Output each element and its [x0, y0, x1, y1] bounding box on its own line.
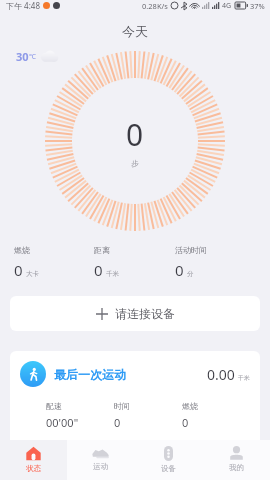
other: 运动 [92, 446, 109, 459]
staticText: 0 [14, 260, 23, 280]
staticText: 今天 [122, 23, 148, 39]
button[interactable]: 距离 [94, 243, 175, 282]
staticText: 燃烧 [14, 245, 30, 255]
staticText: 分 [187, 270, 194, 278]
staticText: 0 [94, 260, 103, 280]
staticText: 请连接设备 [115, 306, 175, 321]
staticText: 下午 4:48 [6, 0, 40, 11]
staticText: 我的 [229, 463, 244, 472]
button[interactable]: 运动 [67, 440, 134, 480]
other: 设备 [164, 446, 173, 461]
staticText: 步 [131, 159, 139, 168]
staticText: 00'00" [46, 415, 79, 430]
staticText: 0.28K/s [142, 1, 168, 11]
staticText: 30 [16, 49, 29, 64]
staticText: 大卡 [26, 270, 39, 278]
staticText: 状态 [26, 464, 41, 473]
staticText: 千米 [106, 270, 119, 278]
button[interactable]: 请连接设备 [10, 296, 260, 331]
staticText: 4G [222, 1, 232, 11]
other: 我的 [229, 446, 244, 460]
staticText: 0 [114, 415, 121, 430]
button[interactable]: 30 [14, 47, 61, 66]
staticText: 活动时间 [175, 245, 207, 255]
staticText: 运动 [93, 462, 108, 471]
staticText: 燃烧 [182, 401, 198, 411]
button[interactable]: 状态 [0, 440, 67, 480]
staticText: 配速 [46, 401, 62, 411]
button[interactable]: 设备 [134, 440, 202, 480]
staticText: 37% [250, 1, 265, 11]
staticText: 时间 [114, 401, 130, 411]
staticText: 0 [126, 114, 144, 155]
button[interactable]: 活动时间 [175, 243, 256, 282]
staticText: 0.00 [207, 365, 235, 384]
staticText: 距离 [94, 245, 110, 255]
staticText: 千米 [238, 374, 250, 382]
staticText: 最后一次运动 [54, 367, 126, 382]
button[interactable]: 最后一次运动 [10, 351, 260, 450]
other: 状态 [26, 446, 41, 461]
button[interactable]: 燃烧 [14, 243, 94, 282]
staticText: 0 [175, 260, 184, 280]
staticText: ℃ [29, 52, 36, 62]
staticText: 设备 [161, 464, 176, 473]
staticText: 0 [182, 415, 189, 430]
button[interactable]: 我的 [202, 440, 270, 480]
